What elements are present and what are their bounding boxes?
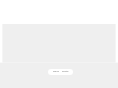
staticText: English [53, 70, 60, 72]
button[interactable]: Español [61, 71, 70, 73]
button[interactable]: English [52, 71, 61, 73]
staticText: Español [62, 70, 69, 72]
